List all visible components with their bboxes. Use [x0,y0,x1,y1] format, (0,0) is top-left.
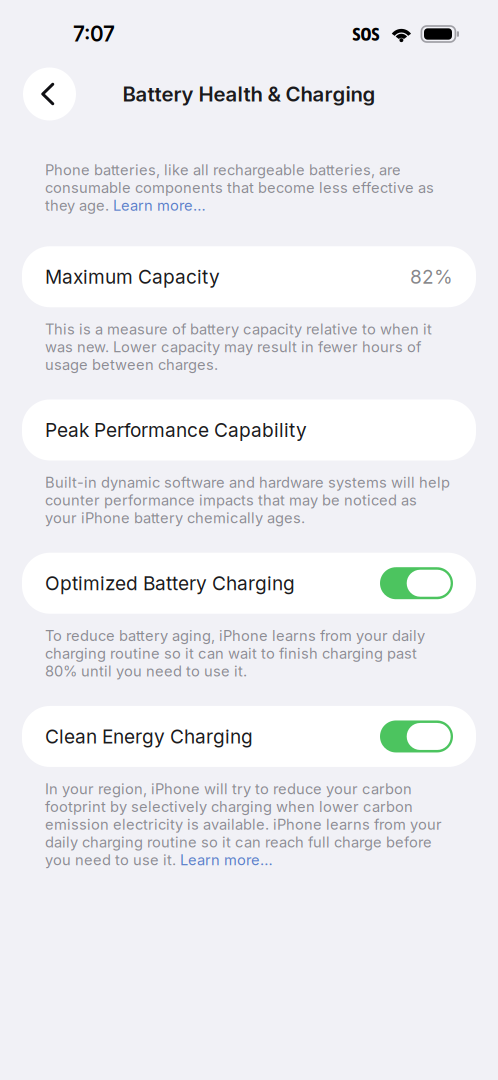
staticText: 82% [410,265,453,288]
staticText: Maximum Capacity [45,265,220,288]
staticText: In your region, iPhone will try to reduc… [45,780,442,869]
button[interactable]: Maximum Capacity [0,246,498,307]
button[interactable]: Clean Energy Charging [0,706,498,767]
staticText: To reduce battery aging, iPhone learns f… [45,627,425,680]
button[interactable]: Optimized Battery Charging [0,553,498,614]
staticText: Clean Energy Charging [45,725,253,748]
staticText: This is a measure of battery capacity re… [45,320,432,373]
staticText: 7:07 [73,21,115,46]
staticText: SOS [352,23,379,45]
staticText: Built-in dynamic software and hardware s… [45,473,450,527]
staticText: Peak Performance Capability [45,418,307,441]
staticText: Phone batteries, like all rechargeable b… [45,161,434,214]
staticText: Battery Health & Charging [122,82,375,106]
staticText: Optimized Battery Charging [45,572,295,595]
button[interactable]: Back [23,67,76,120]
button[interactable]: Peak Performance Capability [0,399,498,460]
